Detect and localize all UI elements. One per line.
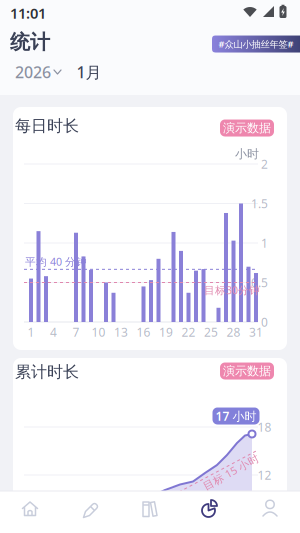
- button[interactable]: 演示数据: [220, 119, 274, 136]
- button[interactable]: [130, 491, 170, 527]
- button[interactable]: [70, 491, 110, 527]
- staticText: 17 小时: [215, 408, 256, 424]
- staticText: 1月: [76, 61, 101, 83]
- staticText: 平均 40 分钟: [25, 254, 87, 269]
- staticText: 19: [159, 324, 173, 340]
- staticText: 统计: [10, 30, 50, 54]
- staticText: #众山小抽丝年签#: [218, 38, 293, 50]
- button[interactable]: 2026: [13, 62, 63, 82]
- staticText: 10: [91, 324, 105, 340]
- button[interactable]: [10, 491, 50, 527]
- staticText: 16: [136, 324, 150, 340]
- staticText: 2: [261, 156, 268, 172]
- button[interactable]: [250, 491, 290, 527]
- staticText: 11:01: [10, 3, 46, 23]
- staticText: 小时: [235, 147, 259, 161]
- staticText: 12: [257, 467, 271, 483]
- staticText: 1: [261, 235, 268, 251]
- staticText: 目标 15 小时: [200, 465, 262, 479]
- staticText: 25: [204, 324, 218, 340]
- staticText: 22: [181, 324, 195, 340]
- staticText: 18: [257, 419, 271, 435]
- button[interactable]: #众山小抽丝年签#: [212, 35, 300, 52]
- staticText: 28: [226, 324, 240, 340]
- staticText: 13: [114, 324, 128, 340]
- staticText: 0: [261, 314, 268, 330]
- staticText: 7: [72, 324, 79, 340]
- staticText: 2026: [15, 61, 51, 83]
- staticText: 31: [249, 324, 263, 340]
- staticText: 演示数据: [223, 121, 271, 135]
- staticText: 目标30分钟: [204, 283, 260, 297]
- staticText: 1: [27, 324, 34, 340]
- button[interactable]: 1月: [74, 62, 104, 82]
- staticText: 演示数据: [223, 364, 271, 378]
- button[interactable]: [190, 491, 230, 527]
- staticText: 4: [50, 324, 57, 340]
- staticText: 每日时长: [15, 116, 79, 136]
- staticText: 累计时长: [15, 362, 79, 382]
- button[interactable]: 演示数据: [220, 362, 274, 379]
- staticText: 1.5: [251, 195, 268, 211]
- staticText: 0.5: [251, 274, 268, 290]
